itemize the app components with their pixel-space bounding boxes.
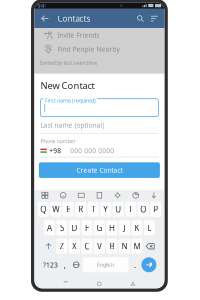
button[interactable]: O <box>138 202 149 217</box>
staticText: Contacts <box>57 13 90 24</box>
button[interactable]: K <box>131 220 142 235</box>
button[interactable]: H <box>106 220 117 235</box>
button[interactable]: Sort <box>147 9 161 28</box>
staticText: L <box>147 222 151 233</box>
button[interactable]: Keyboard tool <box>111 190 124 201</box>
button[interactable]: E <box>63 202 74 217</box>
button[interactable]: English <box>83 257 129 272</box>
button[interactable]: Keyboard tool <box>129 190 142 201</box>
staticText: V <box>97 241 102 252</box>
staticText: E <box>66 204 70 215</box>
staticText: , <box>64 259 66 270</box>
staticText: S <box>60 222 64 233</box>
staticText: Create Contact <box>76 166 122 175</box>
button[interactable]: Back <box>37 9 52 28</box>
staticText: D <box>71 222 77 233</box>
button[interactable]: F <box>81 220 92 235</box>
staticText: First name (required) <box>45 97 96 104</box>
button[interactable]: Enter <box>141 257 156 272</box>
staticText: Phone number <box>40 138 75 145</box>
staticText: 9:41 <box>37 2 47 9</box>
staticText: A <box>47 222 52 233</box>
staticText: G <box>96 222 102 233</box>
button[interactable]: T <box>88 202 99 217</box>
button[interactable]: Keyboard tool <box>93 190 106 201</box>
button[interactable]: S <box>56 220 67 235</box>
staticText: F <box>85 222 89 233</box>
staticText: Q <box>40 204 46 215</box>
button[interactable]: Keyboard tool <box>147 190 160 201</box>
button[interactable]: , <box>60 257 70 272</box>
button[interactable]: B <box>106 239 117 254</box>
staticText: 000 000 0000 <box>70 146 114 155</box>
staticText: T <box>91 204 95 215</box>
staticText: +98 <box>49 146 61 155</box>
button[interactable]: D <box>69 220 80 235</box>
button[interactable]: X <box>69 239 80 254</box>
button[interactable]: W <box>50 202 61 217</box>
button[interactable]: Keyboard tool <box>38 190 51 201</box>
button[interactable]: Keyboard tool <box>57 190 70 201</box>
button[interactable]: ?123 <box>42 257 58 272</box>
button[interactable]: Search <box>133 9 147 28</box>
staticText: Y <box>103 204 108 215</box>
button[interactable]: Backspace <box>144 239 157 254</box>
staticText: English <box>97 261 114 268</box>
staticText: Sorted by last seen time <box>39 59 97 66</box>
button[interactable]: P <box>150 202 161 217</box>
button[interactable]: R <box>75 202 86 217</box>
staticText: O <box>140 204 146 215</box>
staticText: P <box>153 204 158 215</box>
staticText: Invite Friends <box>57 31 99 40</box>
button[interactable]: Invite Friends <box>34 28 164 42</box>
staticText: K <box>134 222 139 233</box>
staticText: . <box>134 259 136 270</box>
button[interactable]: . <box>130 257 140 272</box>
button[interactable]: J <box>119 220 130 235</box>
button[interactable]: U <box>113 202 124 217</box>
button[interactable]: L <box>144 220 155 235</box>
staticText: Last name (optional) <box>40 121 104 130</box>
button[interactable]: A <box>44 220 55 235</box>
button[interactable]: Shift <box>42 239 55 254</box>
staticText: J <box>123 222 125 233</box>
button[interactable]: N <box>119 239 130 254</box>
button[interactable]: Language <box>71 257 81 272</box>
staticText: M <box>133 241 140 252</box>
staticText: R <box>78 204 83 215</box>
staticText: Find People Nearby <box>57 45 119 54</box>
staticText: C <box>84 241 89 252</box>
staticText: New Contact <box>40 79 94 92</box>
staticText: B <box>109 241 114 252</box>
button[interactable]: Create Contact <box>39 162 160 178</box>
button[interactable]: Q <box>38 202 49 217</box>
button[interactable]: M <box>131 239 142 254</box>
staticText: X <box>72 241 77 252</box>
button[interactable]: Keyboard tool <box>75 190 88 201</box>
staticText: U <box>115 204 121 215</box>
staticText: I <box>129 204 132 215</box>
button[interactable]: V <box>94 239 105 254</box>
button[interactable]: C <box>81 239 92 254</box>
button[interactable]: Y <box>100 202 111 217</box>
staticText: W <box>52 204 59 215</box>
staticText: N <box>121 241 127 252</box>
button[interactable]: Z <box>56 239 67 254</box>
staticText: Z <box>59 241 64 252</box>
staticText: ?123 <box>43 260 58 269</box>
button[interactable]: I <box>125 202 136 217</box>
button[interactable]: G <box>94 220 105 235</box>
button[interactable]: Find People Nearby <box>34 42 164 56</box>
staticText: H <box>109 222 115 233</box>
